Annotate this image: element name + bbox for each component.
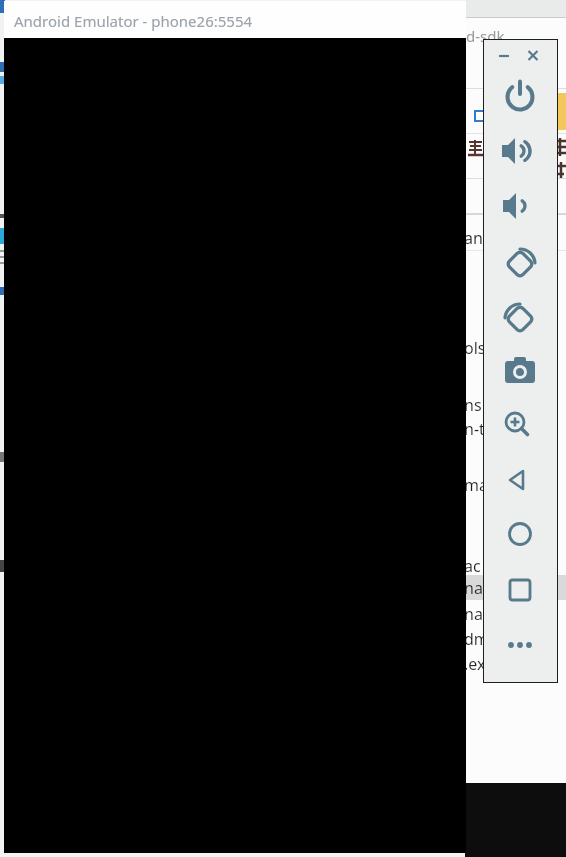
- button[interactable]: [499, 131, 539, 171]
- button[interactable]: [500, 76, 540, 116]
- staticText: n-to: [464, 418, 495, 440]
- button[interactable]: [497, 186, 537, 226]
- staticText: ols: [464, 337, 486, 359]
- staticText: an: [464, 227, 483, 249]
- button[interactable]: [500, 242, 540, 282]
- staticText: d-sdk: [466, 26, 505, 46]
- staticText: Android Emulator - phone26:5554: [14, 11, 253, 31]
- staticText: .ex: [464, 653, 486, 675]
- staticText: ac: [464, 555, 481, 577]
- staticText: nag: [464, 603, 493, 625]
- button[interactable]: [500, 570, 540, 610]
- button[interactable]: [498, 460, 538, 500]
- button[interactable]: [500, 514, 540, 554]
- button[interactable]: [500, 297, 540, 337]
- staticText: ma: [464, 474, 488, 496]
- staticText: nag: [464, 577, 493, 599]
- button[interactable]: [494, 45, 514, 65]
- button[interactable]: [500, 625, 540, 665]
- button[interactable]: [500, 350, 540, 390]
- staticText: ns: [464, 394, 482, 416]
- button[interactable]: [523, 45, 543, 65]
- button[interactable]: [498, 405, 538, 445]
- staticText: dm: [464, 628, 489, 650]
